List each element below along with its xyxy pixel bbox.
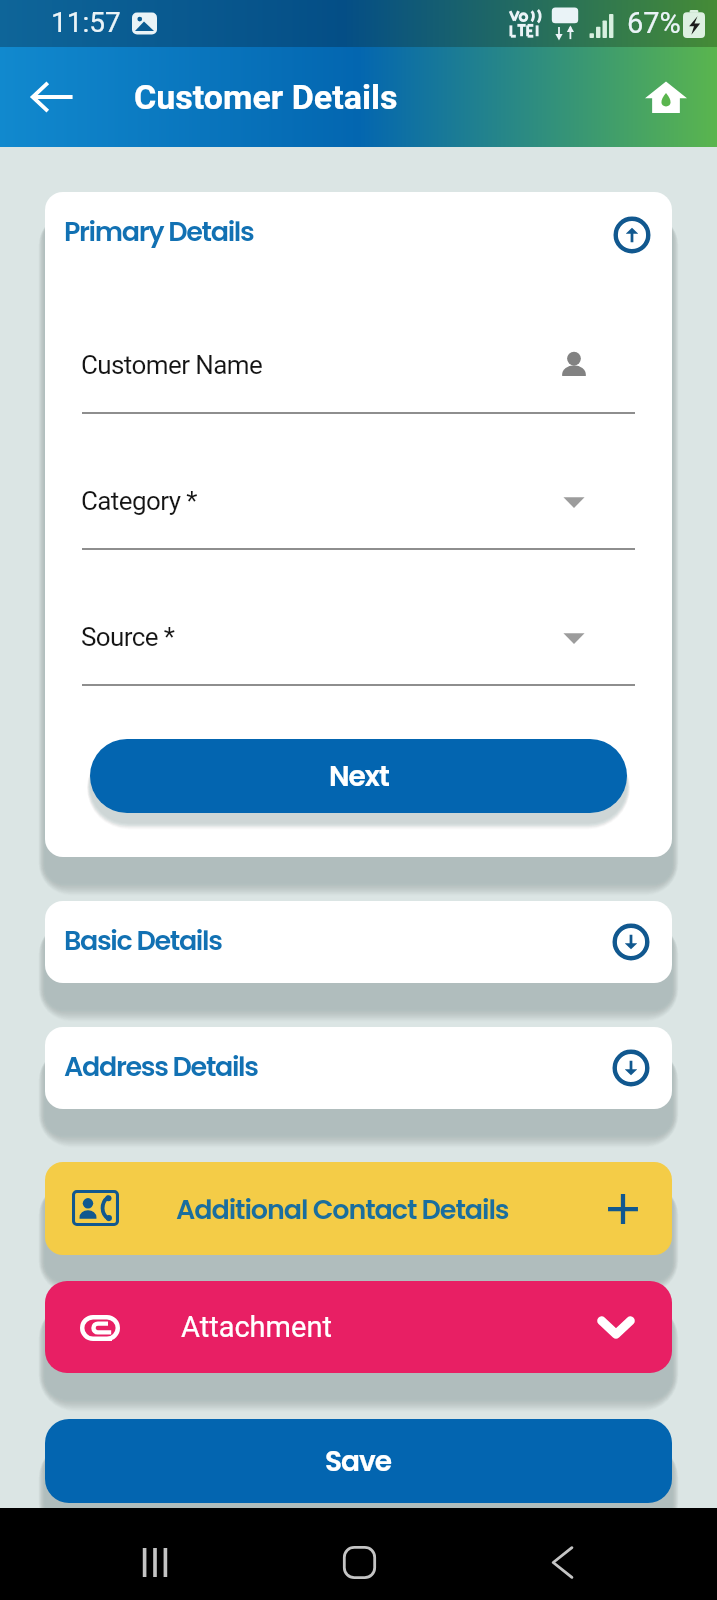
staticText: Save [325, 1442, 392, 1481]
staticText: Category * [81, 486, 197, 516]
button[interactable]: Recent apps [123, 1530, 187, 1594]
button[interactable]: Home [635, 66, 697, 128]
button[interactable]: Attachment [45, 1281, 672, 1373]
button[interactable]: Next [90, 739, 627, 813]
button[interactable]: Back [18, 63, 86, 131]
staticText: Next [329, 757, 389, 796]
staticText: Basic Details [64, 922, 222, 960]
staticText: Attachment [181, 1310, 332, 1344]
staticText: 11:57 [51, 6, 121, 39]
button[interactable]: Customer Name [45, 344, 672, 414]
staticText: Primary Details [64, 213, 254, 251]
button[interactable]: Category * [45, 480, 672, 550]
button[interactable]: Collapse Primary Details [611, 214, 653, 256]
staticText: Customer Details [134, 77, 398, 117]
staticText: 67% [627, 6, 681, 40]
staticText: Additional Contact Details [176, 1191, 509, 1229]
staticText: Address Details [64, 1048, 258, 1086]
button[interactable]: Address Details [45, 1027, 672, 1109]
button[interactable]: Home [327, 1530, 391, 1594]
button[interactable]: Save [45, 1419, 672, 1503]
button[interactable]: Back [530, 1530, 594, 1594]
button[interactable]: Basic Details [45, 901, 672, 983]
button[interactable]: Additional Contact Details [45, 1162, 672, 1255]
button[interactable]: Source * [45, 616, 672, 686]
staticText: Source * [81, 622, 175, 652]
staticText: Customer Name [81, 350, 263, 380]
